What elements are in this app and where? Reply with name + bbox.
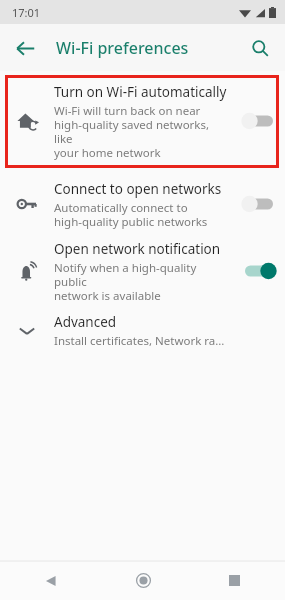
staticText: Advanced bbox=[54, 313, 117, 331]
button[interactable]: Search bbox=[241, 29, 279, 67]
staticText: Wi-Fi preferences bbox=[56, 37, 189, 59]
button[interactable]: Toggle on bbox=[239, 259, 279, 283]
staticText: Wi-Fi will turn back on near high-qualit… bbox=[54, 103, 227, 160]
staticText: Automatically connect to high-quality pu… bbox=[54, 200, 208, 229]
button[interactable]: Back bbox=[30, 561, 72, 600]
button[interactable]: Open network notification bbox=[0, 237, 285, 305]
button[interactable]: Back bbox=[6, 29, 44, 67]
button[interactable]: Toggle off bbox=[239, 192, 279, 216]
staticText: Turn on Wi-Fi automatically bbox=[54, 83, 227, 101]
button[interactable]: Toggle off bbox=[239, 109, 279, 133]
staticText: Connect to open networks bbox=[54, 180, 222, 198]
staticText: Notify when a high-quality public networ… bbox=[54, 260, 227, 303]
button[interactable]: Advanced bbox=[0, 305, 285, 357]
button[interactable]: Turn on Wi-Fi automatically bbox=[0, 71, 285, 171]
staticText: 17:01 bbox=[12, 5, 41, 20]
button[interactable]: Connect to open networks bbox=[0, 171, 285, 237]
staticText: Install certificates, Network rating pro… bbox=[54, 333, 227, 349]
button[interactable]: Recent apps bbox=[213, 561, 255, 600]
button[interactable]: Home bbox=[122, 561, 164, 600]
staticText: Open network notification bbox=[54, 240, 221, 258]
